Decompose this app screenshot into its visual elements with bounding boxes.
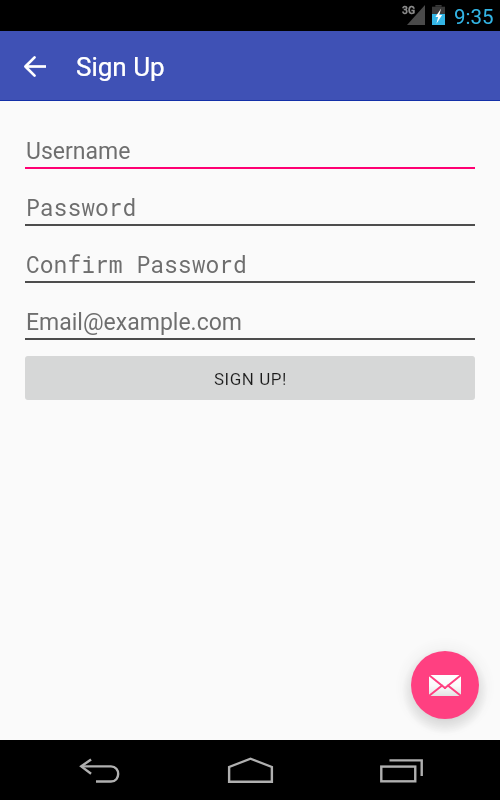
staticText: Username xyxy=(26,138,131,165)
staticText: SIGN UP! xyxy=(214,369,287,389)
button[interactable]: Back xyxy=(58,740,142,800)
button[interactable] xyxy=(25,302,475,340)
staticText: Sign Up xyxy=(76,52,165,82)
button[interactable]: Home xyxy=(208,740,292,800)
button[interactable]: Send mail xyxy=(411,651,479,719)
staticText: Confirm Password xyxy=(26,249,247,279)
button[interactable]: Recent apps xyxy=(359,740,443,800)
button[interactable] xyxy=(25,188,475,226)
button[interactable]: Navigate up xyxy=(10,32,60,101)
button[interactable] xyxy=(25,245,475,283)
staticText: Password xyxy=(26,192,137,222)
button[interactable] xyxy=(25,131,475,169)
staticText: 9:35 xyxy=(454,5,494,29)
staticText: 3G xyxy=(402,4,416,16)
button[interactable]: SIGN UP! xyxy=(25,356,475,400)
staticText: Email@example.com xyxy=(26,309,242,336)
